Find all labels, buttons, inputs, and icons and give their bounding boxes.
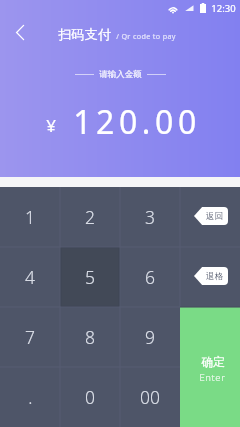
button[interactable]: 4: [0, 247, 60, 307]
staticText: 7: [25, 325, 35, 349]
button[interactable]: .: [0, 367, 60, 427]
button[interactable]: 8: [60, 307, 120, 367]
staticText: 0: [85, 385, 95, 409]
staticText: 9: [145, 325, 155, 349]
button[interactable]: 退格: [194, 267, 228, 285]
staticText: .: [28, 385, 33, 409]
staticText: 确定: [201, 355, 225, 370]
button[interactable]: 0: [60, 367, 120, 427]
staticText: 5: [85, 265, 95, 289]
staticText: 8: [85, 325, 95, 349]
staticText: 12:30: [211, 2, 236, 15]
staticText: 120.00: [73, 100, 201, 144]
staticText: ¥: [46, 114, 56, 137]
staticText: 3: [145, 205, 155, 229]
button[interactable]: 7: [0, 307, 60, 367]
button[interactable]: 1: [0, 187, 60, 247]
button[interactable]: 返回: [194, 207, 228, 225]
button[interactable]: 6: [120, 247, 180, 307]
staticText: 4: [25, 265, 35, 289]
staticText: 扫码支付: [58, 26, 111, 43]
button[interactable]: 00: [120, 367, 180, 427]
staticText: Enter: [199, 371, 226, 384]
button[interactable]: 3: [120, 187, 180, 247]
staticText: 2: [85, 205, 95, 229]
staticText: 00: [140, 385, 160, 409]
button[interactable]: 5: [60, 247, 120, 307]
staticText: 退格: [206, 271, 223, 282]
button[interactable]: 确定: [180, 307, 240, 427]
staticText: 1: [25, 205, 35, 229]
staticText: / Qr code to pay: [116, 31, 176, 41]
button[interactable]: Back: [5, 17, 35, 47]
staticText: 请输入金额: [99, 69, 142, 80]
staticText: 返回: [206, 211, 223, 222]
button[interactable]: 2: [60, 187, 120, 247]
staticText: 6: [145, 265, 155, 289]
button[interactable]: 9: [120, 307, 180, 367]
